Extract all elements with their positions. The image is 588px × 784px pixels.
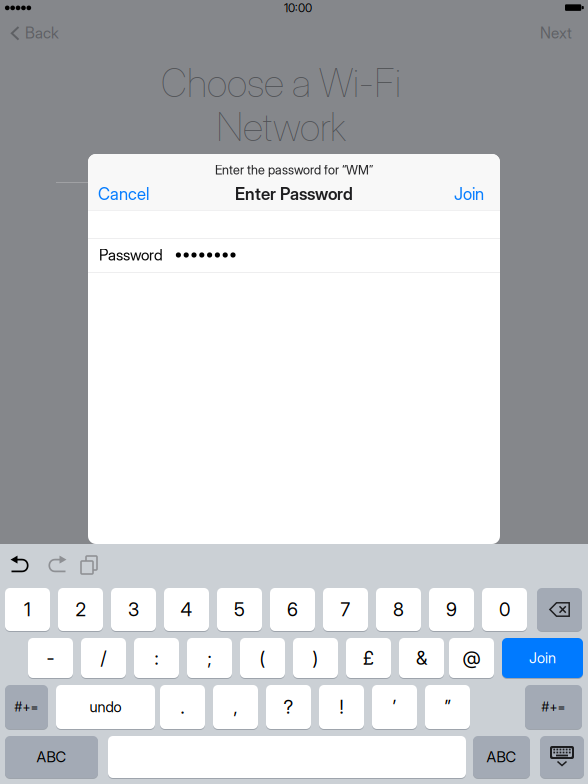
- button[interactable]: Join: [394, 182, 484, 206]
- button[interactable]: 8: [376, 587, 421, 632]
- button[interactable]: #+=: [5, 684, 48, 730]
- button[interactable]: /: [81, 637, 126, 679]
- staticText: 5: [234, 598, 245, 621]
- button[interactable]: ?: [266, 684, 311, 730]
- button[interactable]: ’: [372, 684, 417, 730]
- button[interactable]: -: [28, 637, 73, 679]
- staticText: Back: [25, 24, 59, 42]
- staticText: ”: [444, 696, 450, 718]
- staticText: (: [259, 647, 265, 669]
- staticText: ’: [392, 696, 396, 718]
- staticText: 8: [393, 598, 404, 621]
- staticText: 2: [75, 598, 85, 621]
- staticText: ,: [233, 696, 237, 718]
- staticText: -: [46, 647, 54, 669]
- staticText: Choose a Wi-Fi: [161, 60, 401, 106]
- staticText: Join: [529, 649, 556, 667]
- button[interactable]: Back: [10, 20, 100, 46]
- button[interactable]: Join: [502, 637, 583, 679]
- staticText: 0: [499, 598, 510, 621]
- button[interactable]: undo: [56, 684, 155, 730]
- button[interactable]: Delete: [537, 587, 582, 632]
- button[interactable]: &: [399, 637, 444, 679]
- staticText: Cancel: [98, 184, 149, 204]
- staticText: #+=: [14, 699, 38, 715]
- staticText: Password: [99, 246, 163, 264]
- staticText: /: [100, 647, 106, 669]
- button[interactable]: Cancel: [98, 182, 188, 206]
- button[interactable]: :: [134, 637, 179, 679]
- staticText: #+=: [541, 699, 565, 715]
- staticText: 9: [446, 598, 457, 621]
- staticText: 6: [287, 598, 298, 621]
- button[interactable]: Space: [108, 735, 466, 779]
- staticText: ?: [283, 696, 293, 718]
- button[interactable]: 2: [58, 587, 103, 632]
- button[interactable]: @: [449, 637, 494, 679]
- button[interactable]: 3: [111, 587, 156, 632]
- button[interactable]: 5: [217, 587, 262, 632]
- staticText: 7: [340, 598, 350, 621]
- staticText: undo: [89, 698, 121, 716]
- staticText: Network: [216, 104, 346, 150]
- button[interactable]: 7: [323, 587, 368, 632]
- button[interactable]: #+=: [525, 684, 582, 730]
- button[interactable]: .: [160, 684, 205, 730]
- staticText: Join: [454, 184, 484, 204]
- staticText: 10:00: [284, 1, 312, 15]
- staticText: ABC: [36, 748, 66, 766]
- staticText: Enter Password: [235, 184, 353, 204]
- button[interactable]: 6: [270, 587, 315, 632]
- button[interactable]: (: [240, 637, 285, 679]
- staticText: Enter the password for “WM”: [215, 162, 373, 178]
- button[interactable]: Hide keyboard: [540, 735, 584, 779]
- button[interactable]: Password: [88, 238, 500, 272]
- button[interactable]: ABC: [473, 735, 530, 779]
- button[interactable]: ABC: [5, 735, 98, 779]
- button[interactable]: 4: [164, 587, 209, 632]
- staticText: ): [312, 647, 318, 669]
- button[interactable]: 0: [482, 587, 527, 632]
- button[interactable]: 9: [429, 587, 474, 632]
- staticText: Next: [540, 24, 572, 42]
- button[interactable]: Redo: [45, 557, 67, 575]
- button[interactable]: !: [319, 684, 364, 730]
- button[interactable]: ): [293, 637, 338, 679]
- button[interactable]: ;: [187, 637, 232, 679]
- button[interactable]: ,: [213, 684, 258, 730]
- staticText: !: [339, 696, 343, 718]
- staticText: £: [363, 647, 374, 669]
- staticText: &: [416, 647, 427, 669]
- staticText: .: [180, 696, 184, 718]
- staticText: @: [462, 647, 480, 669]
- button[interactable]: ”: [425, 684, 470, 730]
- button[interactable]: £: [346, 637, 391, 679]
- staticText: 3: [128, 598, 139, 621]
- staticText: ABC: [486, 748, 516, 766]
- staticText: :: [154, 647, 158, 669]
- staticText: 1: [24, 598, 31, 621]
- button[interactable]: 1: [5, 587, 50, 632]
- staticText: ;: [207, 647, 211, 669]
- button[interactable]: Next: [492, 20, 572, 46]
- staticText: 4: [180, 598, 192, 621]
- button[interactable]: Paste: [81, 556, 101, 576]
- button[interactable]: Undo: [10, 557, 32, 575]
